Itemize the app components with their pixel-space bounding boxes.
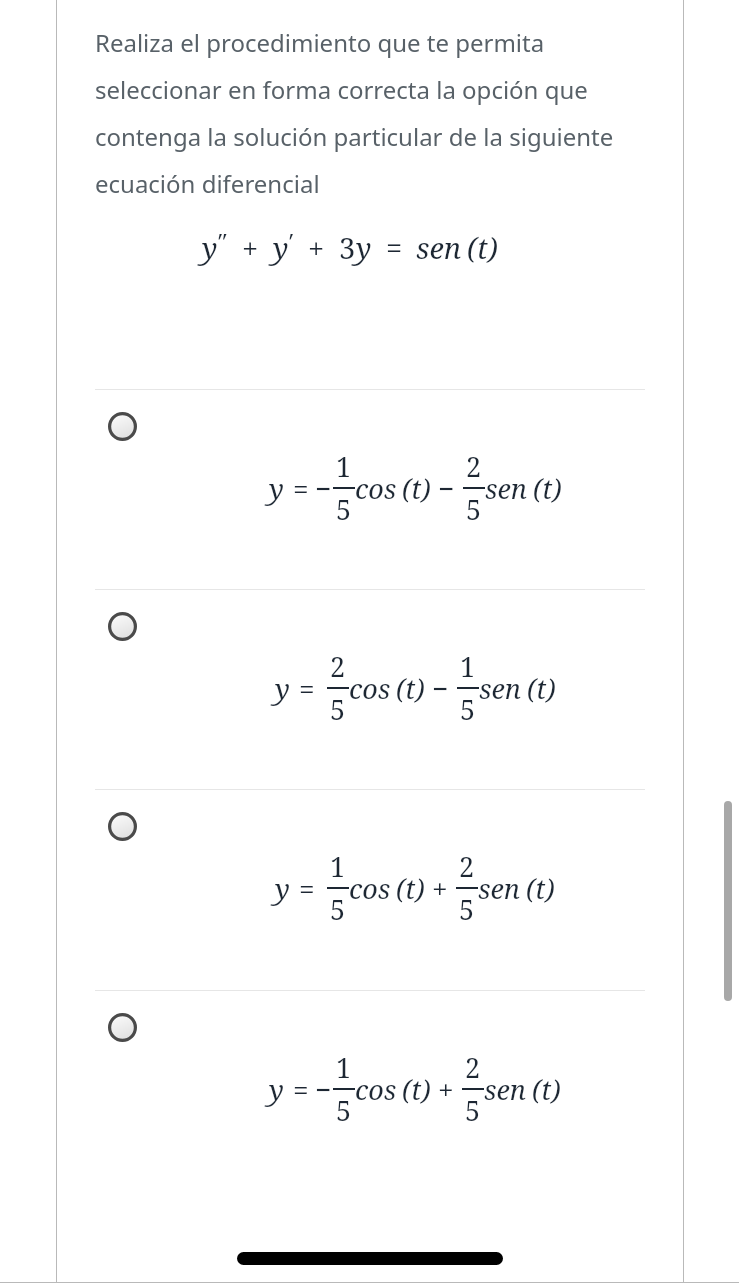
button[interactable]: Select option bbox=[56, 991, 684, 1190]
button[interactable]: Select option bbox=[56, 790, 684, 990]
staticText: cos bbox=[349, 670, 391, 707]
button[interactable]: Select option bbox=[108, 1013, 137, 1042]
staticText: (t) bbox=[532, 1071, 561, 1108]
staticText: 2 bbox=[330, 648, 346, 685]
staticText: sen bbox=[479, 670, 522, 707]
staticText: y bbox=[269, 469, 284, 507]
staticText: = bbox=[293, 1070, 309, 1108]
staticText: − bbox=[315, 469, 332, 507]
staticText: 2 bbox=[466, 448, 482, 485]
staticText: 1 bbox=[336, 1049, 352, 1086]
staticText: cos bbox=[355, 1071, 397, 1108]
button[interactable]: Select option bbox=[108, 412, 137, 441]
button[interactable]: Select option bbox=[56, 390, 684, 589]
staticText: 5 bbox=[336, 491, 352, 528]
staticText: 5 bbox=[330, 891, 346, 928]
staticText: + bbox=[432, 869, 448, 907]
staticText: (t) bbox=[527, 670, 556, 707]
staticText: = bbox=[386, 228, 403, 267]
staticText: y bbox=[202, 228, 218, 267]
staticText: (t) bbox=[402, 470, 431, 507]
staticText: ″ bbox=[218, 225, 228, 258]
button[interactable]: Home bbox=[237, 1252, 503, 1265]
button[interactable]: Select option bbox=[108, 812, 137, 841]
staticText: sen bbox=[416, 228, 462, 267]
staticText: 3 bbox=[339, 228, 356, 267]
button[interactable]: Select option bbox=[56, 590, 684, 789]
staticText: sen bbox=[484, 1071, 527, 1108]
staticText: (t) bbox=[402, 1071, 431, 1108]
staticText: 1 bbox=[460, 648, 476, 685]
staticText: ′ bbox=[289, 225, 294, 258]
staticText: + bbox=[438, 1070, 454, 1108]
staticText: (t) bbox=[467, 228, 498, 267]
staticText: 5 bbox=[465, 1092, 481, 1129]
staticText: 2 bbox=[465, 1049, 481, 1086]
staticText: − bbox=[438, 469, 455, 507]
staticText: (t) bbox=[526, 870, 555, 907]
staticText: − bbox=[432, 669, 449, 707]
staticText: cos bbox=[355, 470, 397, 507]
staticText: 2 bbox=[459, 848, 475, 885]
staticText: 5 bbox=[336, 1092, 352, 1129]
staticText: + bbox=[242, 228, 259, 267]
staticText: cos bbox=[349, 870, 391, 907]
staticText: (t) bbox=[396, 670, 425, 707]
staticText: y bbox=[269, 1070, 284, 1108]
staticText: = bbox=[293, 469, 309, 507]
staticText: (t) bbox=[533, 470, 562, 507]
staticText: y bbox=[275, 869, 290, 907]
staticText: (t) bbox=[396, 870, 425, 907]
staticText: = bbox=[299, 869, 315, 907]
staticText: y bbox=[275, 669, 290, 707]
staticText: = bbox=[299, 669, 315, 707]
staticText: + bbox=[308, 228, 325, 267]
staticText: y bbox=[273, 228, 289, 267]
staticText: 1 bbox=[336, 448, 352, 485]
staticText: Realiza el procedimiento que te permita … bbox=[95, 26, 660, 200]
staticText: 5 bbox=[460, 691, 476, 728]
staticText: sen bbox=[485, 470, 528, 507]
staticText: 5 bbox=[330, 691, 346, 728]
staticText: 5 bbox=[466, 491, 482, 528]
staticText: sen bbox=[478, 870, 521, 907]
staticText: y bbox=[356, 228, 372, 267]
staticText: − bbox=[315, 1070, 332, 1108]
button[interactable]: Select option bbox=[108, 612, 137, 641]
staticText: 5 bbox=[459, 891, 475, 928]
staticText: 1 bbox=[330, 848, 346, 885]
